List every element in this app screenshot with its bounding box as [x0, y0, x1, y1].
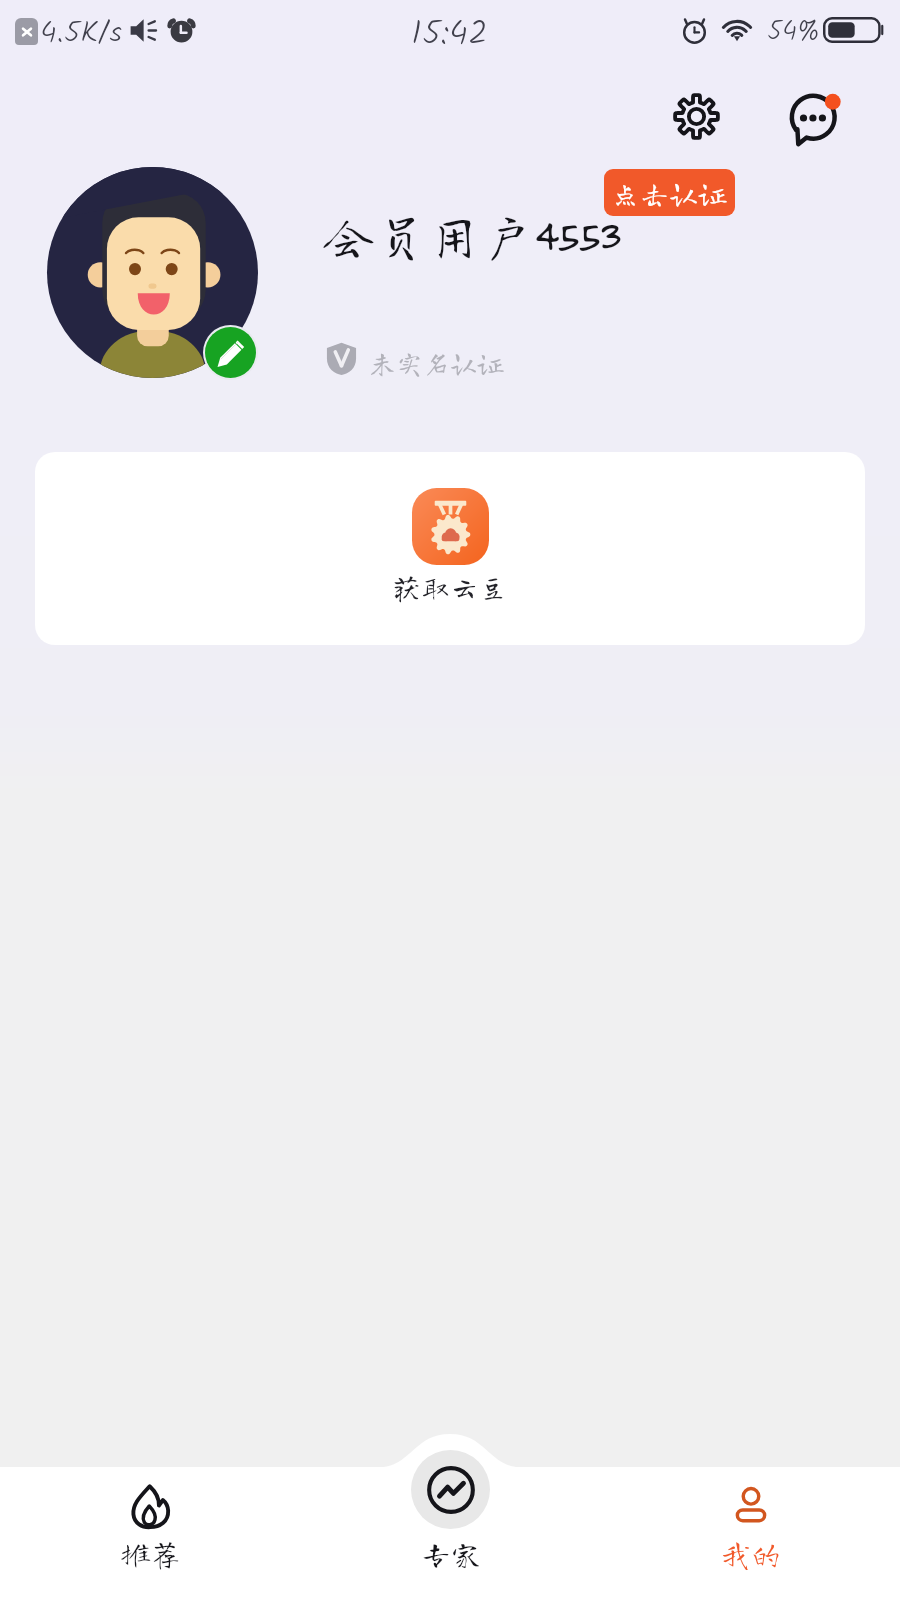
staticText: 点击认证 [611, 178, 728, 207]
button[interactable]: Messages [772, 76, 852, 156]
staticText: 54% [767, 11, 820, 54]
button[interactable]: Edit avatar [47, 167, 258, 378]
staticText: 未实名认证 [369, 349, 504, 376]
button[interactable]: 获取云豆 [35, 452, 865, 645]
button[interactable]: Settings [660, 80, 732, 152]
button[interactable]: 推荐 [96, 1471, 206, 1600]
staticText: 专家 [396, 1539, 506, 1569]
staticText: 15:42 [411, 8, 488, 62]
button[interactable]: 点击认证 [604, 169, 735, 216]
staticText: 获取云豆 [35, 572, 865, 601]
button[interactable]: 未实名认证 [326, 342, 504, 375]
button[interactable]: 专家 [396, 1445, 506, 1600]
staticText: 4.5K/s [40, 10, 122, 58]
button[interactable]: 我的 [696, 1471, 806, 1600]
staticText: 会员用户4553 [322, 208, 620, 261]
button[interactable]: Edit avatar [205, 327, 256, 378]
staticText: 我的 [696, 1539, 806, 1569]
staticText: 推荐 [96, 1539, 206, 1569]
